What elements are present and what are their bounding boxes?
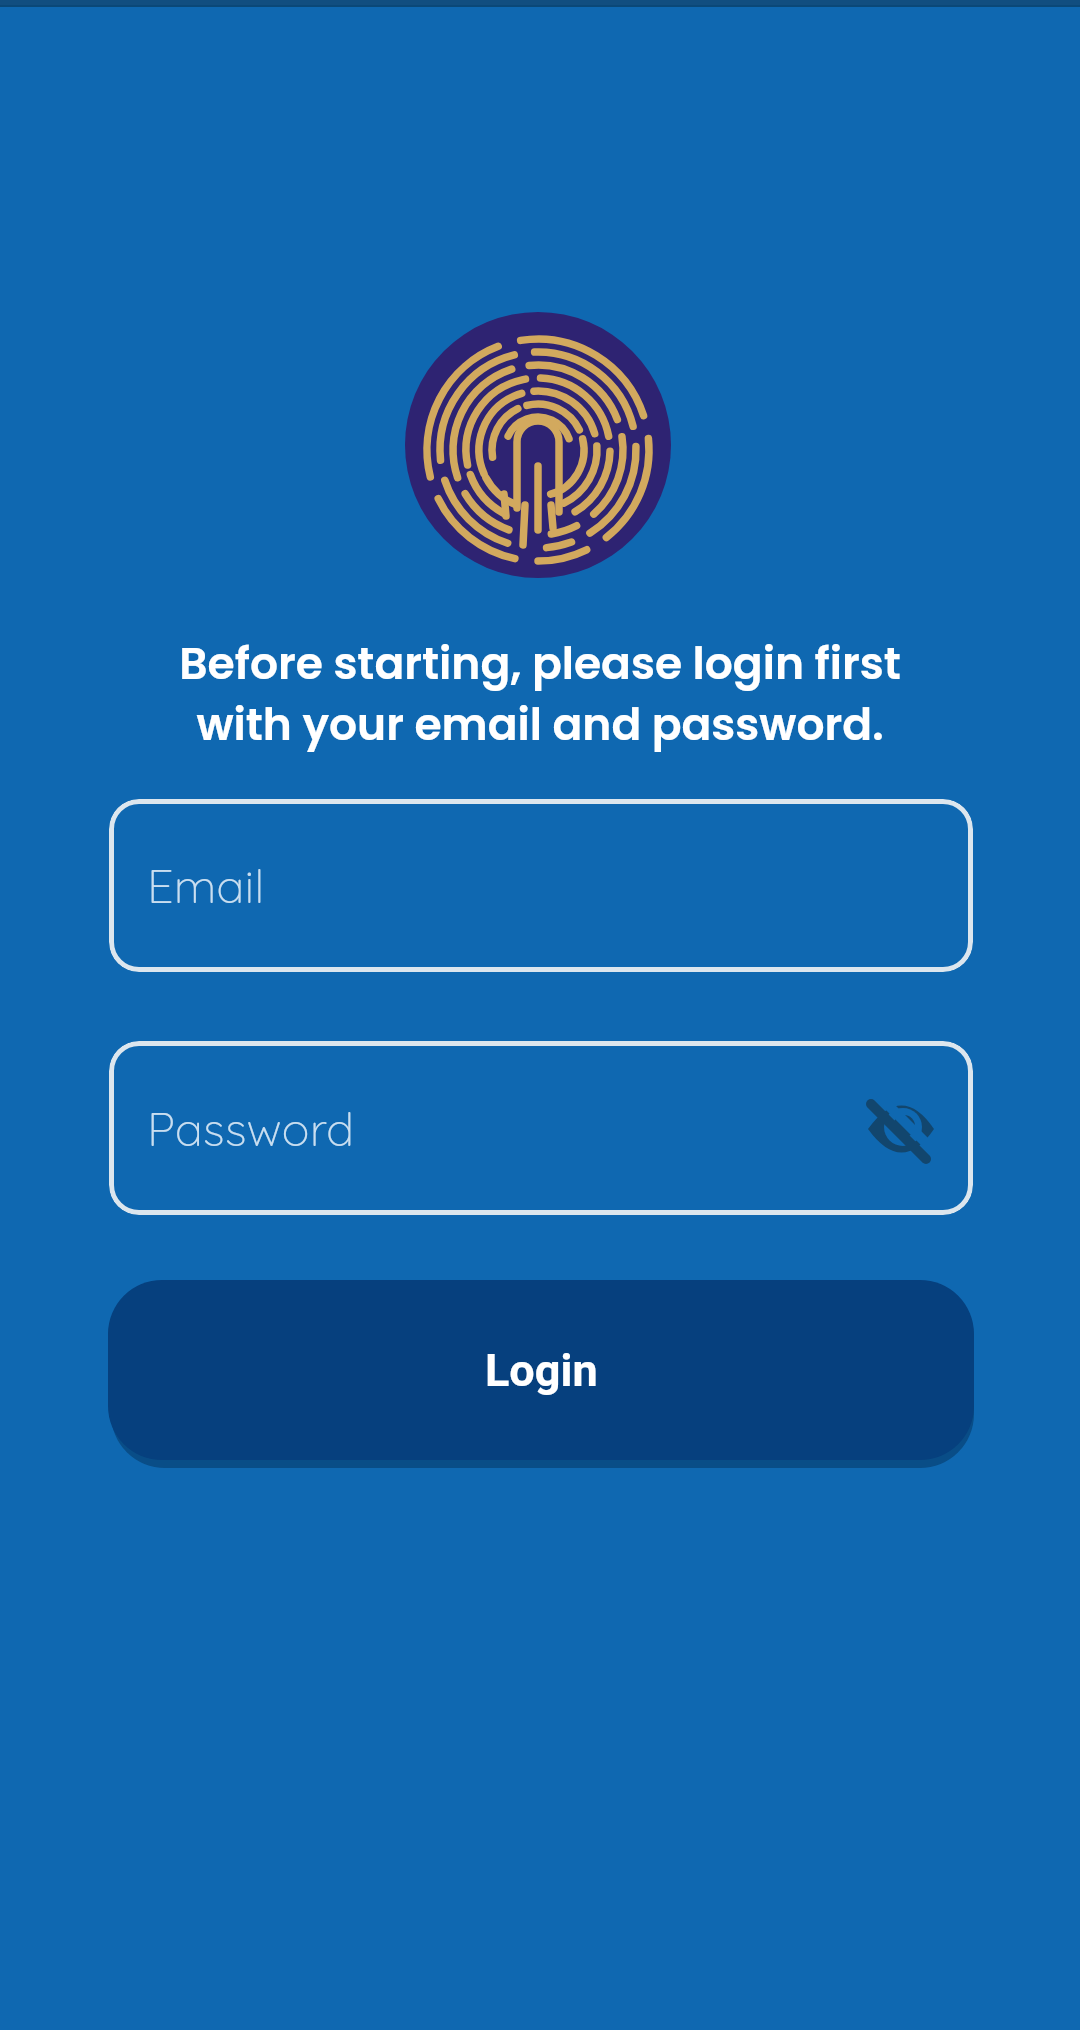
staticText: Before starting, please login first with… — [0, 633, 1080, 755]
staticText: Password — [147, 1099, 355, 1158]
button[interactable]: Login — [108, 1280, 974, 1460]
button[interactable] — [867, 1096, 937, 1160]
staticText: Email — [147, 856, 265, 915]
button[interactable]: Password — [109, 1041, 973, 1215]
button[interactable]: Email — [109, 799, 973, 972]
staticText: Login — [485, 1344, 598, 1397]
